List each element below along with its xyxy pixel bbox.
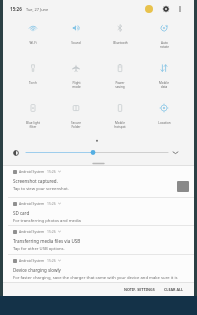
button[interactable]: NOTIF. SETTINGS <box>122 287 157 292</box>
button[interactable]: Blue light filter <box>11 99 54 137</box>
staticText: 15:26 <box>47 229 56 234</box>
staticText: CLEAR ALL <box>164 287 184 292</box>
staticText: Flight mode <box>72 81 81 89</box>
button[interactable]: Android System <box>3 198 194 225</box>
staticText: Location <box>158 121 171 125</box>
button[interactable]: Expand brightness <box>172 149 179 156</box>
button[interactable]: Mobile data <box>142 59 186 99</box>
button[interactable]: Secure Folder <box>54 99 98 137</box>
staticText: 15:26 <box>10 6 22 12</box>
button[interactable]: Wi-Fi <box>11 19 54 59</box>
staticText: SD card <box>13 210 30 216</box>
staticText: For transferring photos and media <box>13 218 81 224</box>
staticText: Android System <box>19 169 45 174</box>
button[interactable]: Settings <box>162 5 170 13</box>
button[interactable]: Location <box>142 99 186 137</box>
staticText: Tap to view your screenshot. <box>13 186 69 192</box>
button[interactable]: Android System <box>3 255 194 282</box>
button[interactable]: Android System <box>3 226 194 254</box>
staticText: Android System <box>19 229 45 234</box>
staticText: Tue, 27 June <box>26 7 49 12</box>
button[interactable]: Power saving <box>98 59 142 99</box>
staticText: 15:26 <box>47 201 56 206</box>
staticText: Transferring media files via USB <box>13 238 81 244</box>
staticText: Secure Folder <box>71 121 81 129</box>
button[interactable]: User profile <box>145 5 153 13</box>
staticText: Device charging slowly <box>13 267 61 273</box>
button[interactable]: CLEAR ALL <box>162 287 186 292</box>
staticText: Torch <box>29 81 37 85</box>
staticText: Tap for other USB options. <box>13 246 65 252</box>
staticText: Wi-Fi <box>29 41 37 45</box>
button[interactable]: More options <box>176 5 184 13</box>
button[interactable]: Brightness <box>13 150 19 156</box>
staticText: Android System <box>19 258 45 263</box>
staticText: 15:26 <box>47 169 56 174</box>
staticText: For faster charging, save the charger th… <box>13 275 189 281</box>
staticText: 15:26 <box>47 258 56 263</box>
button[interactable]: Torch <box>11 59 54 99</box>
button[interactable]: Auto rotate <box>142 19 186 59</box>
staticText: Bluetooth <box>113 41 128 45</box>
staticText: Mobile data <box>159 81 169 89</box>
button[interactable]: Bluetooth <box>98 19 142 59</box>
staticText: Blue light filter <box>26 121 40 129</box>
button[interactable]: Sound <box>54 19 98 59</box>
staticText: NOTIF. SETTINGS <box>124 287 155 292</box>
staticText: Sound <box>71 41 81 45</box>
staticText: Power saving <box>115 81 125 89</box>
staticText: Auto rotate <box>160 41 169 49</box>
staticText: Android System <box>19 201 45 206</box>
button[interactable]: Android System <box>3 166 194 197</box>
staticText: Mobile hotspot <box>114 121 126 129</box>
button[interactable]: Mobile hotspot <box>98 99 142 137</box>
staticText: Screenshot captured. <box>13 178 58 184</box>
button[interactable]: Flight mode <box>54 59 98 99</box>
